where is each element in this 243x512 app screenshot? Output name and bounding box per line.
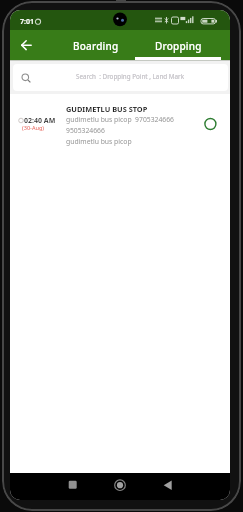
staticText: 02:40 AM <box>24 116 56 126</box>
button[interactable]: Boarding <box>54 30 138 60</box>
staticText: Search : Dropping Point , Land Mark <box>76 72 184 81</box>
button[interactable] <box>10 473 84 500</box>
staticText: Boarding <box>73 39 119 53</box>
staticText: Dropping <box>155 39 202 53</box>
staticText: GUDIMETLU BUS STOP <box>66 104 148 114</box>
staticText: 9505324666 <box>66 126 105 135</box>
button[interactable]: 02:40 AM <box>10 95 230 165</box>
button[interactable]: Dropping <box>134 30 222 60</box>
button[interactable] <box>10 30 50 60</box>
staticText: (30-Aug) <box>22 124 45 132</box>
button[interactable] <box>84 473 157 500</box>
staticText: 7:01 <box>20 17 34 27</box>
button[interactable] <box>157 473 230 500</box>
button[interactable]: Search : Dropping Point , Land Mark <box>13 64 228 91</box>
staticText: gudimetlu bus picop <box>66 137 132 146</box>
staticText: gudimetlu bus picop 9705324666 <box>66 115 174 124</box>
